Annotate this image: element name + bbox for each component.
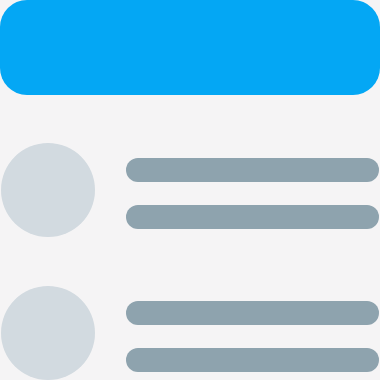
button[interactable]: App bar	[0, 0, 380, 95]
button[interactable]: Item two	[0, 286, 380, 380]
button[interactable]: Item one	[0, 143, 380, 237]
